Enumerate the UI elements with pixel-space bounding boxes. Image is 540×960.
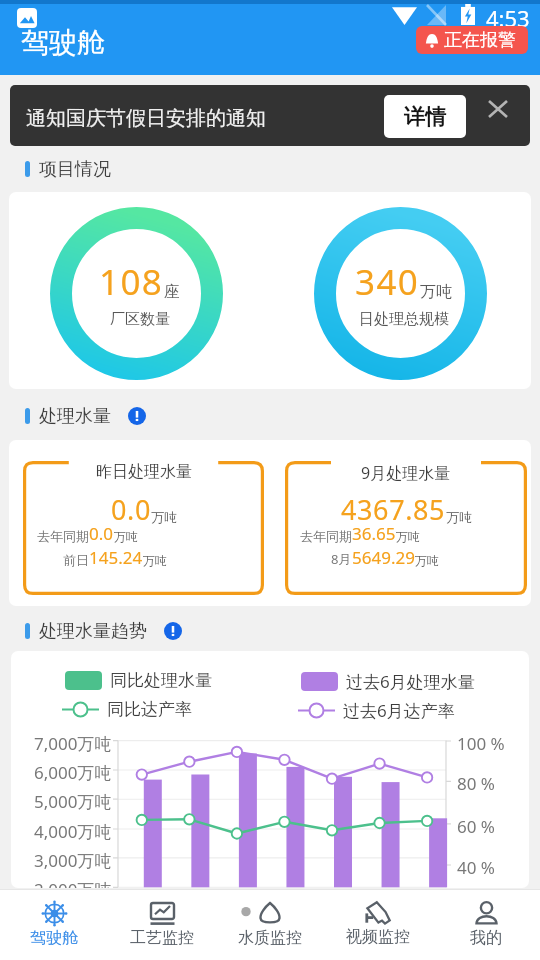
staticText: 去年同期 bbox=[300, 528, 352, 544]
button[interactable]: 正在报警 bbox=[416, 26, 528, 54]
button[interactable]: 我的 bbox=[432, 889, 540, 960]
staticText: 4,000万吨 bbox=[34, 820, 112, 843]
staticText: 厂区数量 bbox=[110, 310, 170, 329]
staticText: 驾驶舱 bbox=[21, 25, 105, 60]
staticText: 项目情况 bbox=[39, 158, 111, 180]
button[interactable]: 工艺监控 bbox=[108, 889, 216, 960]
staticText: 工艺监控 bbox=[130, 928, 194, 948]
staticText: 日处理总规模 bbox=[359, 310, 449, 329]
staticText: 4:53 bbox=[486, 3, 530, 33]
button[interactable]: 视频监控 bbox=[324, 889, 432, 960]
staticText: 80 % bbox=[457, 772, 495, 795]
staticText: 6,000万吨 bbox=[34, 761, 112, 784]
staticText: 108 bbox=[99, 258, 164, 306]
staticText: 通知国庆节假日安排的通知 bbox=[26, 106, 266, 131]
staticText: 7,000万吨 bbox=[34, 732, 112, 755]
staticText: 处理水量趋势 bbox=[39, 620, 147, 642]
staticText: 0.0 bbox=[111, 491, 151, 528]
staticText: 同比处理水量 bbox=[110, 670, 212, 691]
staticText: 9月处理水量 bbox=[361, 462, 451, 484]
staticText: 145.24 bbox=[89, 546, 143, 569]
staticText: 同比达产率 bbox=[107, 699, 192, 720]
staticText: 万吨 bbox=[415, 553, 439, 568]
staticText: 100 % bbox=[457, 732, 505, 755]
staticText: 视频监控 bbox=[346, 927, 410, 947]
staticText: 万吨 bbox=[151, 509, 177, 525]
staticText: 处理水量 bbox=[39, 405, 111, 427]
staticText: 2,000万吨 bbox=[34, 878, 112, 888]
staticText: 过去6月达产率 bbox=[343, 699, 455, 722]
staticText: 0.0 bbox=[89, 522, 114, 545]
staticText: 万吨 bbox=[114, 529, 138, 544]
staticText: 前日 bbox=[63, 552, 89, 568]
staticText: 正在报警 bbox=[444, 29, 516, 52]
staticText: 3,000万吨 bbox=[34, 849, 112, 872]
staticText: 座 bbox=[164, 282, 180, 302]
button[interactable]: Close bbox=[478, 89, 518, 129]
button[interactable]: 水质监控 bbox=[216, 889, 324, 960]
staticText: 我的 bbox=[470, 928, 502, 948]
staticText: 40 % bbox=[457, 856, 495, 879]
button[interactable]: 驾驶舱 bbox=[0, 889, 108, 960]
staticText: 5649.29 bbox=[352, 546, 415, 569]
staticText: 万吨 bbox=[143, 553, 167, 568]
staticText: 340 bbox=[355, 258, 420, 306]
staticText: 水质监控 bbox=[238, 928, 302, 948]
staticText: 详情 bbox=[404, 104, 446, 130]
staticText: 万吨 bbox=[420, 282, 452, 302]
staticText: 4367.85 bbox=[341, 491, 446, 528]
staticText: 万吨 bbox=[446, 509, 472, 525]
button[interactable]: 详情 bbox=[384, 95, 466, 138]
staticText: 去年同期 bbox=[37, 528, 89, 544]
staticText: 驾驶舱 bbox=[30, 928, 78, 948]
staticText: 过去6月处理水量 bbox=[346, 670, 475, 693]
staticText: 36.65 bbox=[352, 522, 396, 545]
staticText: 万吨 bbox=[396, 529, 420, 544]
staticText: 昨日处理水量 bbox=[96, 462, 192, 482]
staticText: 5,000万吨 bbox=[34, 790, 112, 813]
staticText: 8月 bbox=[331, 550, 352, 568]
staticText: 60 % bbox=[457, 815, 495, 838]
